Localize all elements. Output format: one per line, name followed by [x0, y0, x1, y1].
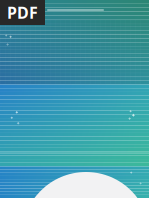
- staticText: PDF: [7, 2, 38, 23]
- button[interactable]: PDF: [0, 0, 45, 25]
